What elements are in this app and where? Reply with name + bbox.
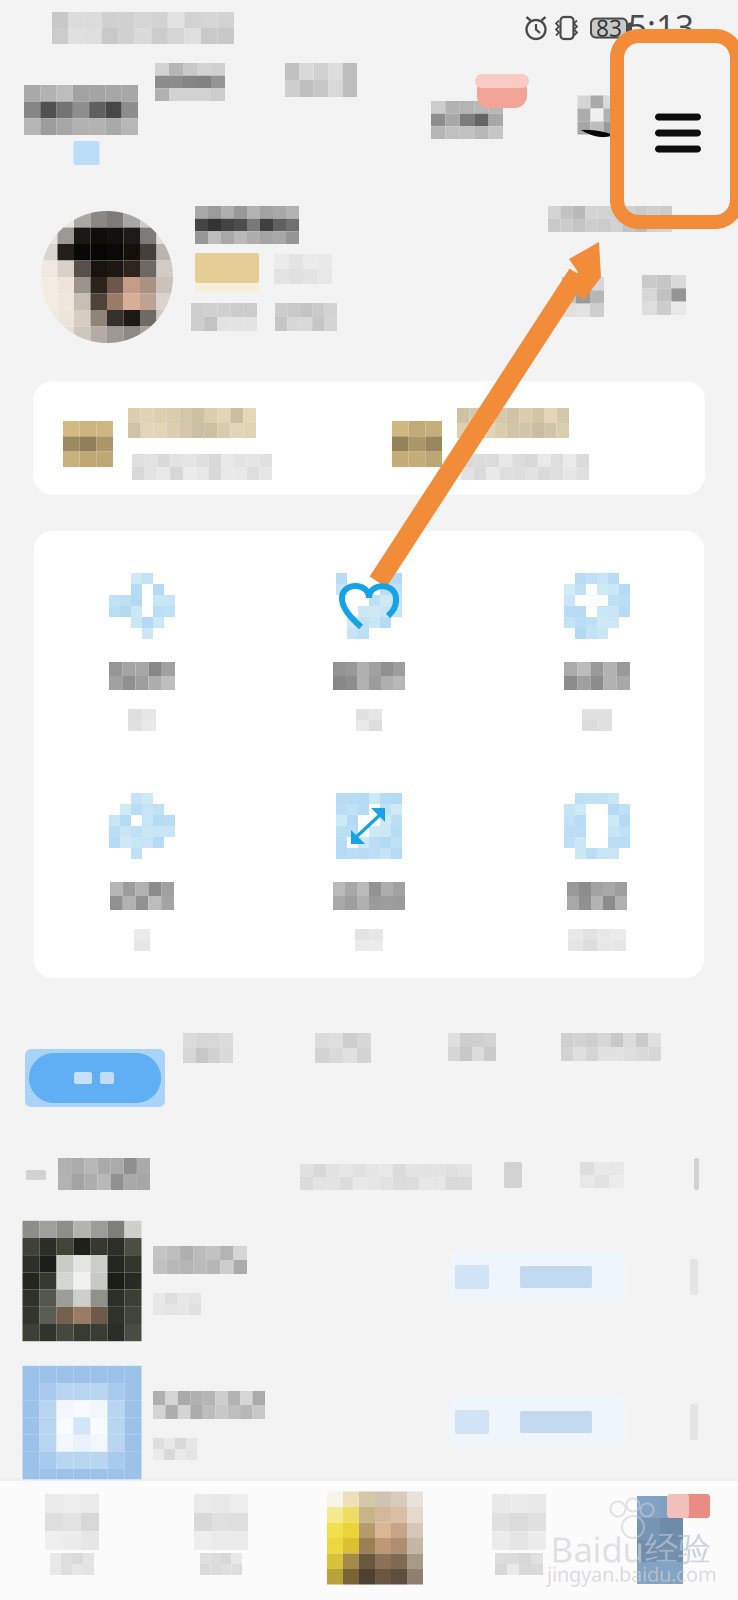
button[interactable] [0,0,738,1600]
button[interactable] [0,0,738,1600]
button[interactable] [0,0,738,1600]
staticText: 经验 [645,1528,711,1569]
staticText: 5:13 [628,4,694,48]
button[interactable] [0,0,738,1600]
button[interactable]: Shortcut [0,0,738,1600]
button[interactable]: Shortcut [0,0,738,1600]
button[interactable] [0,0,738,1600]
button[interactable] [0,0,738,1600]
button[interactable] [0,0,738,1600]
staticText: Baidu [550,1526,643,1572]
staticText: 83 [596,13,622,43]
button[interactable]: Tab [0,0,738,1600]
button[interactable] [0,0,738,1600]
button[interactable] [0,0,738,1600]
button[interactable] [0,0,738,1600]
button[interactable]: Profile photo [0,0,738,1600]
staticText: jingyan.baidu.com [547,1561,717,1587]
button[interactable]: Search [0,0,738,1600]
button[interactable]: Tab [0,0,738,1600]
button[interactable] [0,0,738,1600]
button[interactable] [0,0,738,1600]
button[interactable] [0,0,738,1600]
button[interactable]: Tab [0,0,738,1600]
button[interactable]: Menu [0,0,738,1600]
button[interactable] [0,0,738,1600]
button[interactable] [0,0,738,1600]
button[interactable] [0,0,738,1600]
button[interactable] [0,0,738,1600]
button[interactable] [0,0,738,1600]
button[interactable] [0,0,738,1600]
button[interactable]: Tab [0,0,738,1600]
button[interactable]: Tab [0,0,738,1600]
button[interactable] [0,0,738,1600]
